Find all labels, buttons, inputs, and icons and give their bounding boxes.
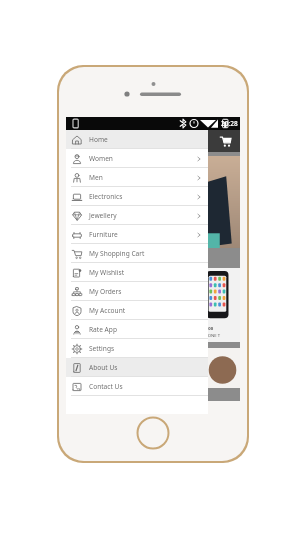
- button[interactable]: Cart: [218, 134, 233, 149]
- staticText: PLE PHONE T: [194, 333, 220, 339]
- button[interactable]: My Account: [66, 301, 208, 320]
- staticText: 62,999.00: [194, 326, 214, 332]
- staticText: Electronics: [89, 192, 123, 201]
- staticText: My Wishlist: [89, 268, 125, 277]
- button[interactable]: Furniture: [66, 225, 208, 244]
- staticText: About Us: [89, 363, 118, 372]
- button[interactable]: Settings: [66, 339, 208, 358]
- button[interactable]: Electronics: [66, 187, 208, 206]
- staticText: My Shopping Cart: [89, 249, 145, 258]
- staticText: Home: [89, 135, 108, 144]
- button[interactable]: My Wishlist: [66, 263, 208, 282]
- staticText: Men: [89, 173, 103, 182]
- staticText: Settings: [89, 344, 115, 353]
- button[interactable]: About Us: [66, 358, 208, 377]
- staticText: My Account: [89, 306, 126, 315]
- staticText: Jewellery: [89, 211, 117, 220]
- staticText: 20:28: [221, 119, 238, 128]
- staticText: Furniture: [89, 230, 118, 239]
- button[interactable]: Home: [66, 130, 208, 149]
- staticText: Contact Us: [89, 382, 123, 391]
- staticText: My Orders: [89, 287, 122, 296]
- button[interactable]: Contact Us: [66, 377, 208, 396]
- button[interactable]: Jewellery: [66, 206, 208, 225]
- button[interactable]: Rate App: [66, 320, 208, 339]
- button[interactable]: 62,999.00: [192, 268, 240, 342]
- staticText: Rate App: [89, 325, 117, 334]
- button[interactable]: Men: [66, 168, 208, 187]
- button[interactable]: My Shopping Cart: [66, 244, 208, 263]
- button[interactable]: My Orders: [66, 282, 208, 301]
- staticText: Women: [89, 154, 113, 163]
- button[interactable]: Women: [66, 149, 208, 168]
